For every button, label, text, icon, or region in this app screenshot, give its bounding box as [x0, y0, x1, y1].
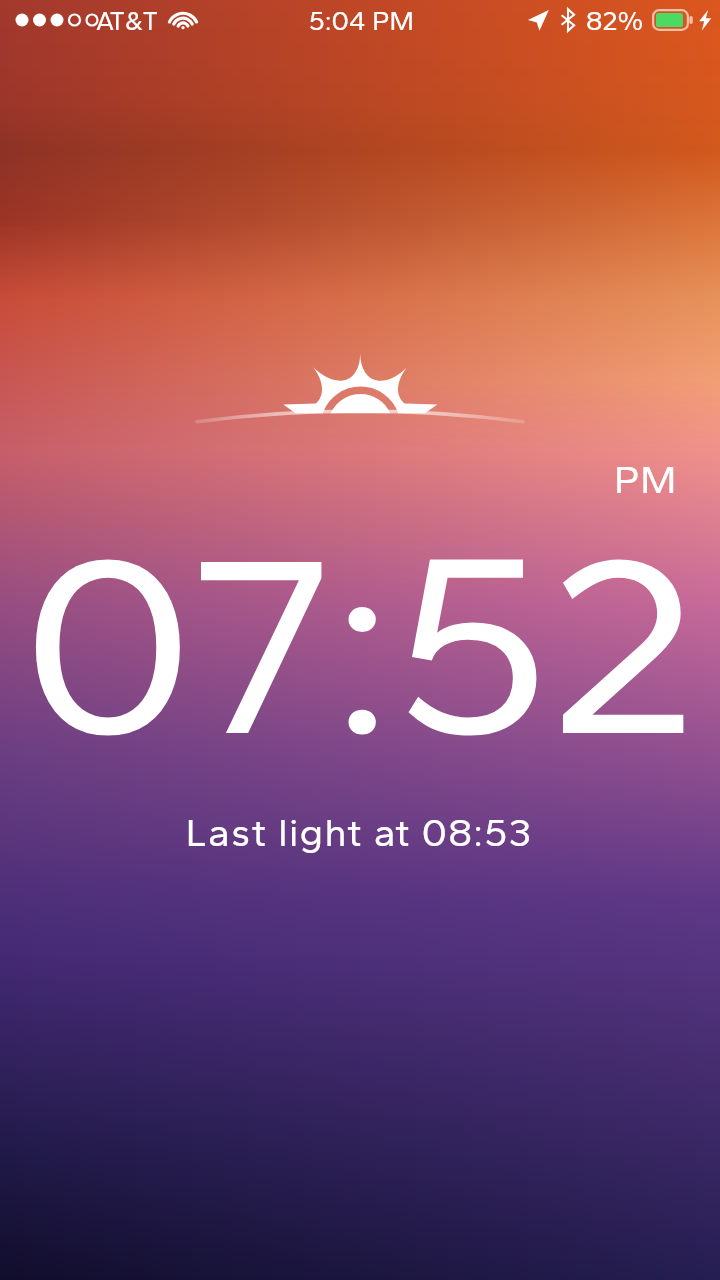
staticText: 82%: [586, 4, 644, 36]
staticText: AT&T: [96, 5, 158, 36]
staticText: PM: [614, 455, 678, 503]
staticText: Last light at 08:53: [0, 809, 719, 856]
staticText: 07:52: [0, 490, 720, 797]
staticText: 5:04 PM: [309, 4, 414, 36]
